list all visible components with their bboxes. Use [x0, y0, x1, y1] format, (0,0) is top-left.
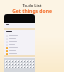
button[interactable] [4, 43, 35, 46]
button[interactable] [4, 49, 35, 52]
staticText: Get things done [12, 8, 52, 15]
button[interactable] [4, 46, 35, 49]
button[interactable] [4, 52, 35, 55]
button[interactable] [4, 40, 35, 43]
button[interactable] [4, 37, 35, 40]
button[interactable] [4, 34, 35, 37]
staticText: To-do List [22, 3, 42, 8]
